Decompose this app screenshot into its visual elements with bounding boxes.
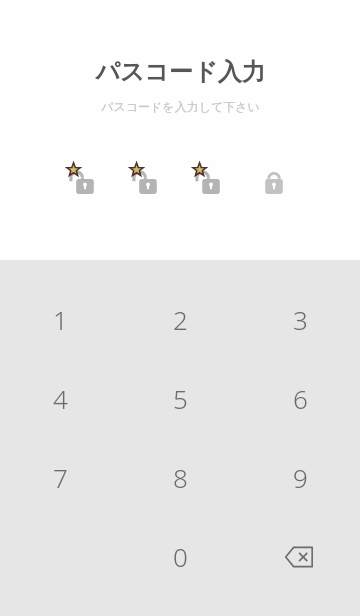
button[interactable]: 2 [120, 280, 240, 359]
button[interactable]: 3 [240, 280, 360, 359]
staticText: 1 [53, 302, 68, 337]
staticText: 3 [293, 302, 308, 337]
staticText: 5 [173, 381, 188, 416]
button[interactable]: 9 [240, 438, 360, 517]
button[interactable]: 1 [0, 280, 120, 359]
button[interactable]: 7 [0, 438, 120, 517]
button[interactable]: 8 [120, 438, 240, 517]
staticText: 8 [173, 460, 188, 495]
staticText: パスコードを入力して下さい [101, 99, 260, 114]
button[interactable]: Backspace [240, 517, 360, 596]
button[interactable]: 6 [240, 359, 360, 438]
staticText: 4 [53, 381, 68, 416]
button[interactable]: 5 [120, 359, 240, 438]
staticText: 9 [293, 460, 308, 495]
staticText: 6 [293, 381, 308, 416]
button[interactable]: 0 [120, 517, 240, 596]
button[interactable]: 4 [0, 359, 120, 438]
staticText: パスコード入力 [95, 57, 266, 87]
staticText: 2 [173, 302, 188, 337]
staticText: 0 [173, 539, 188, 574]
staticText: 7 [53, 460, 68, 495]
